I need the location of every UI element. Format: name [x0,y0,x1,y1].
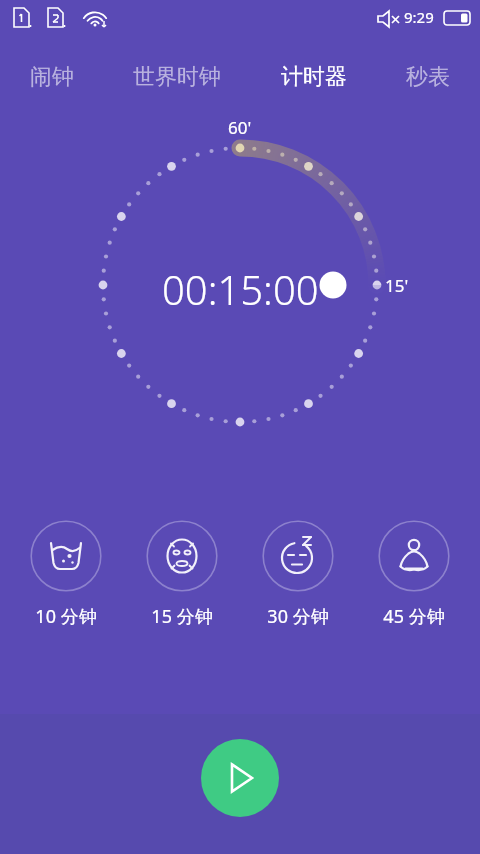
button[interactable]: Nap 30 minutes [248,520,348,629]
button[interactable]: 秒表 [376,52,480,102]
staticText: 9:29 [404,7,434,27]
button[interactable]: 闹钟 [0,52,103,102]
staticText: 世界时钟 [133,63,221,91]
staticText: 计时器 [281,63,347,91]
staticText: 60' [228,116,252,139]
button[interactable]: 计时器 [251,52,376,102]
button[interactable]: Wash 10 minutes [16,520,116,629]
staticText: 秒表 [406,63,450,91]
staticText: 10 分钟 [35,604,97,629]
button[interactable]: Meditate 45 minutes [364,520,464,629]
staticText: 30 分钟 [267,604,329,629]
staticText: 15 分钟 [151,604,213,629]
button[interactable]: Start timer [201,739,279,817]
staticText: 15' [385,274,409,297]
button[interactable]: 世界时钟 [103,52,251,102]
button[interactable]: Face mask 15 minutes [132,520,232,629]
staticText: 00:15:00 [162,262,319,316]
staticText: 45 分钟 [383,604,445,629]
staticText: 闹钟 [30,63,74,91]
